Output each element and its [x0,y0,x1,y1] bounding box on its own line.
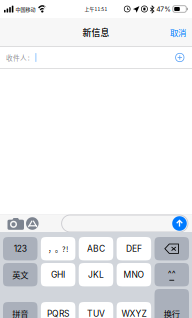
staticText: ^^ [168,269,176,279]
staticText: DEF [126,243,142,254]
button[interactable]: ^^ [154,263,189,286]
button[interactable]: ABC [79,237,113,260]
staticText: JKL [88,269,104,280]
button[interactable]: 拼音 [3,302,37,318]
button[interactable]: 换行 [154,289,189,318]
staticText: 上午11:51 [84,5,107,12]
staticText: 换行 [164,308,180,318]
button[interactable]: ，。?! [41,237,75,260]
button[interactable]: DEF [117,237,151,260]
staticText: 拼音 [12,308,28,318]
staticText: MNO [123,269,144,280]
staticText: 中国移动 [16,5,36,13]
button[interactable]: PQRS [41,302,75,318]
staticText: 47% [156,5,171,13]
button[interactable]: JKL [79,263,113,286]
staticText: WXYZ [121,308,146,318]
button[interactable]: Add contact [173,50,187,65]
button[interactable]: MNO [117,263,151,286]
staticText: GHI [51,269,65,280]
staticText: 收件人： [6,53,34,62]
button[interactable]: Camera [4,215,24,232]
button[interactable]: TUV [79,302,113,318]
staticText: 新信息 [82,26,109,39]
button[interactable]: WXYZ [117,302,151,318]
button[interactable] [154,237,189,260]
staticText: PQRS [47,308,69,318]
button[interactable]: 取消 [162,21,192,43]
button[interactable]: GHI [41,263,75,286]
staticText: TUV [87,308,105,318]
staticText: ABC [87,243,105,254]
staticText: 取消 [170,26,186,38]
button[interactable]: Apps [24,215,42,232]
staticText: 123 [14,243,27,254]
button[interactable]: Send [172,216,187,231]
button[interactable]: 英文 [3,263,37,286]
staticText: 英文 [12,269,28,281]
button[interactable]: 123 [3,237,37,260]
staticText: ，。?! [48,243,68,254]
